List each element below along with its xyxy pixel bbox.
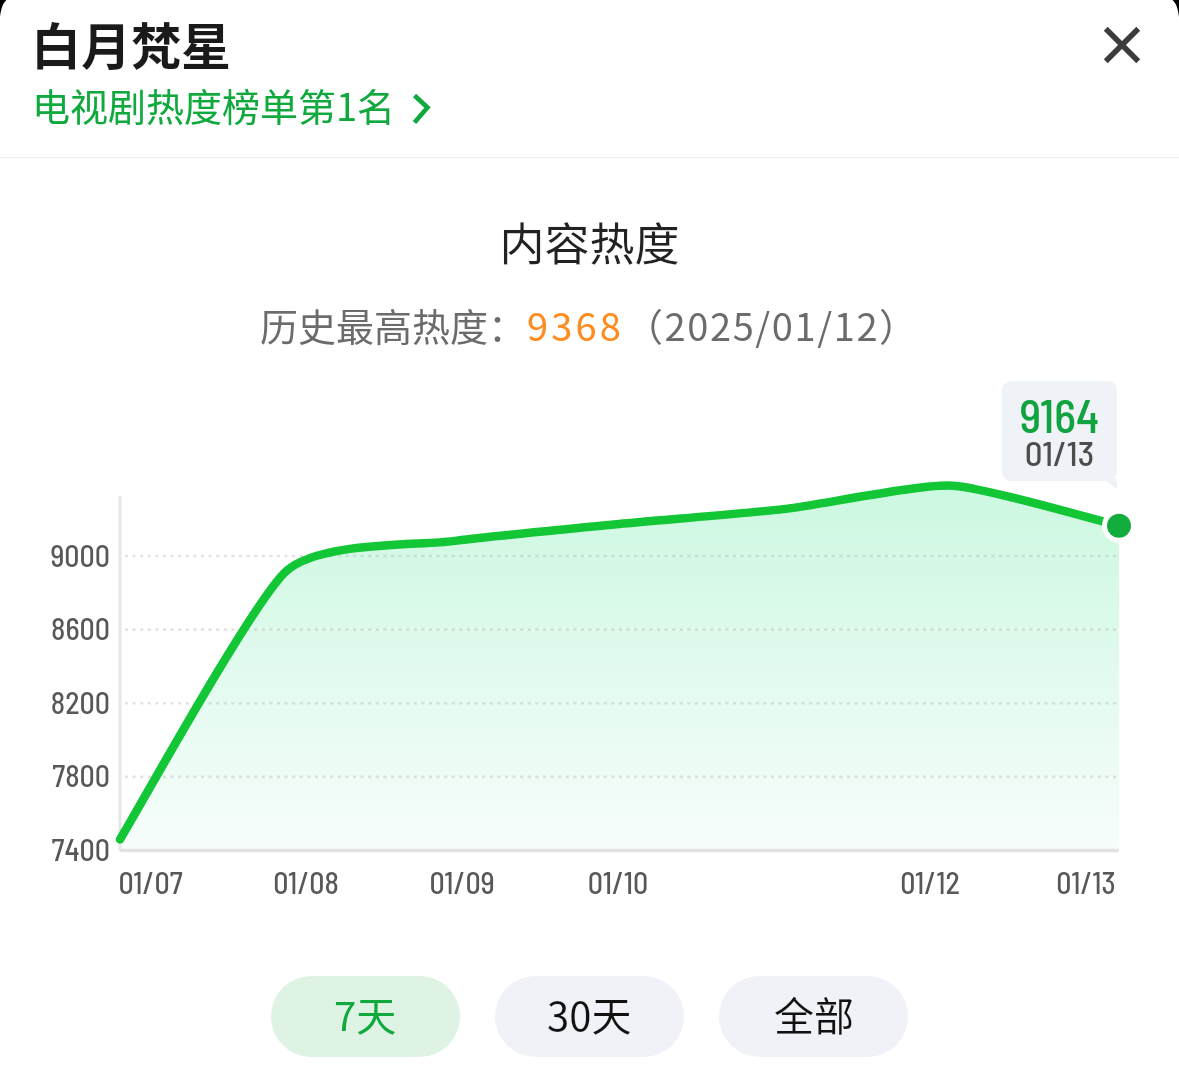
staticText: 内容热度 <box>0 209 1179 274</box>
staticText: 8600 <box>0 610 110 646</box>
button[interactable]: 全部 <box>719 976 908 1057</box>
staticText: 9164 <box>1002 387 1117 442</box>
staticText: 01/08 <box>228 864 384 900</box>
staticText: 电视剧热度榜单第1名 <box>32 77 396 132</box>
staticText: 01/09 <box>384 864 540 900</box>
button[interactable]: Close <box>1089 12 1155 78</box>
button[interactable]: 7天 <box>271 976 460 1057</box>
staticText: 7800 <box>0 757 110 793</box>
staticText: 01/07 <box>73 864 228 900</box>
staticText: 01/13 <box>1008 864 1164 900</box>
staticText: 8200 <box>0 684 110 720</box>
button[interactable]: 30天 <box>495 976 684 1057</box>
staticText: 9000 <box>0 537 110 573</box>
staticText: 7天 <box>334 985 397 1043</box>
button[interactable]: 电视剧热度榜单第1名 <box>32 77 430 132</box>
staticText: 01/10 <box>540 864 696 900</box>
staticText: 白月梵星 <box>31 7 231 79</box>
staticText: 全部 <box>774 985 854 1043</box>
staticText: 9368 <box>527 297 625 352</box>
staticText: （2025/01/12） <box>625 297 919 352</box>
staticText: 01/13 <box>1002 431 1117 473</box>
staticText: 01/12 <box>852 864 1008 900</box>
staticText: 历史最高热度： <box>260 297 527 352</box>
staticText: 7400 <box>0 831 110 867</box>
staticText: 30天 <box>547 985 632 1043</box>
